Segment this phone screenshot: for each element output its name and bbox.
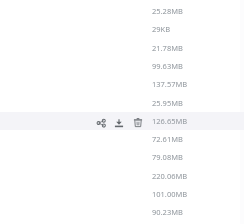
button[interactable]: Share [0,112,244,130]
button[interactable]: Delete [132,115,144,127]
button[interactable]: 25.95MB [0,94,244,112]
staticText: 79.08MB [152,152,183,162]
staticText: 126.65MB [152,116,188,126]
button[interactable]: 90.23MB [0,203,244,221]
button[interactable]: 79.08MB [0,148,244,166]
button[interactable]: Share [95,115,107,127]
staticText: 137.57MB [152,79,188,89]
staticText: 99.63MB [152,61,183,71]
staticText: 25.95MB [152,98,183,108]
staticText: 101.00MB [152,189,188,199]
staticText: 29KB [152,24,171,34]
button[interactable]: 29KB [0,20,244,38]
staticText: 90.23MB [152,207,183,217]
button[interactable]: 72.61MB [0,130,244,148]
button[interactable]: 101.00MB [0,185,244,203]
button[interactable]: 21.78MB [0,39,244,57]
staticText: 220.06MB [152,171,188,181]
staticText: 21.78MB [152,43,183,53]
button[interactable]: 137.57MB [0,75,244,93]
button[interactable]: Download [113,115,125,127]
staticText: 72.61MB [152,134,183,144]
staticText: 25.28MB [152,6,183,16]
button[interactable]: 220.06MB [0,167,244,185]
button[interactable]: 25.28MB [0,2,244,20]
button[interactable]: 99.63MB [0,57,244,75]
